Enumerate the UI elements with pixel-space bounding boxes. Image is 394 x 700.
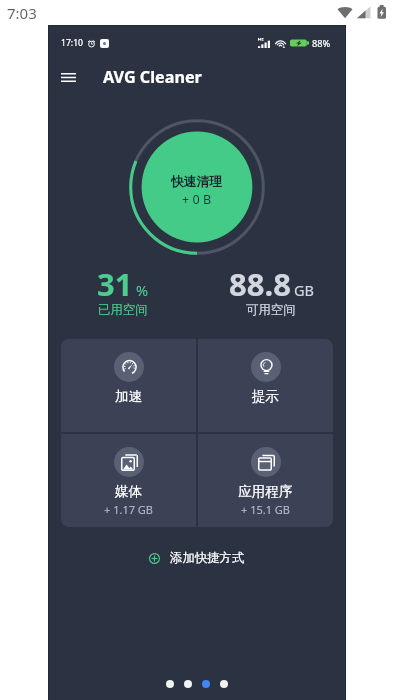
staticText: 应用程序 [238,483,293,500]
staticText: 可用空间 [246,302,296,318]
button[interactable]: 加速 [61,339,196,432]
button[interactable]: 媒体 [61,434,196,527]
staticText: 88% [312,37,331,50]
button[interactable]: Open navigation menu [54,63,82,91]
staticText: 加速 [115,388,143,405]
staticText: + 15.1 GB [241,502,290,517]
staticText: AVG Cleaner [103,66,202,88]
button[interactable]: 提示 [198,339,333,432]
staticText: 已用空间 [98,302,148,318]
staticText: 媒体 [115,483,143,500]
button[interactable]: 添加快捷方式 [49,544,345,572]
staticText: 7:03 [7,3,37,23]
button[interactable]: 应用程序 [198,434,333,527]
staticText: 17:10 [61,37,83,49]
staticText: 88.8 [229,263,291,305]
staticText: GB [294,280,314,300]
button[interactable]: 快速清理 [142,159,252,223]
staticText: 快速清理 [171,174,223,190]
staticText: + 1.17 GB [104,502,153,517]
staticText: + 0 B [182,191,212,208]
staticText: 31 [97,263,133,305]
staticText: 添加快捷方式 [170,550,245,566]
staticText: % [136,280,149,300]
staticText: 提示 [252,388,280,405]
